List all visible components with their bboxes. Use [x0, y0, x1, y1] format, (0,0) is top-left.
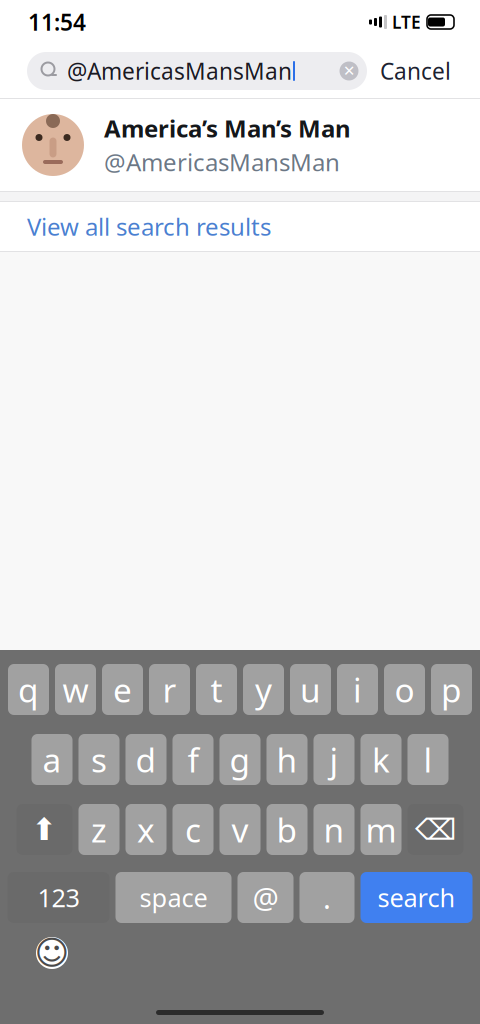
- button[interactable]: c: [172, 804, 213, 855]
- button[interactable]: America’s Man’s Man: [0, 99, 480, 191]
- button[interactable]: Emoji keyboard: [26, 927, 78, 979]
- button[interactable]: Clear text: [331, 52, 367, 90]
- staticText: u: [300, 667, 321, 712]
- button[interactable]: t: [196, 664, 237, 715]
- staticText: search: [377, 881, 455, 914]
- button[interactable]: Delete: [407, 804, 463, 855]
- staticText: LTE: [392, 10, 421, 33]
- staticText: 11:54: [28, 7, 86, 37]
- staticText: o: [394, 667, 414, 712]
- button[interactable]: m: [360, 804, 401, 855]
- staticText: z: [91, 807, 107, 852]
- button[interactable]: p: [431, 664, 472, 715]
- button[interactable]: y: [243, 664, 284, 715]
- staticText: s: [91, 737, 107, 782]
- staticText: p: [441, 667, 462, 712]
- staticText: ☺: [34, 934, 69, 972]
- button[interactable]: i: [337, 664, 378, 715]
- button[interactable]: space: [115, 872, 231, 923]
- button[interactable]: b: [266, 804, 307, 855]
- button[interactable]: z: [78, 804, 119, 855]
- staticText: q: [18, 667, 39, 712]
- staticText: ⬆: [31, 812, 57, 847]
- button[interactable]: search: [360, 872, 472, 923]
- button[interactable]: n: [313, 804, 354, 855]
- staticText: v: [231, 807, 248, 852]
- button[interactable]: f: [172, 734, 213, 785]
- staticText: d: [135, 737, 156, 782]
- staticText: k: [372, 737, 390, 782]
- button[interactable]: d: [125, 734, 166, 785]
- staticText: t: [210, 667, 222, 712]
- staticText: l: [423, 737, 432, 782]
- button[interactable]: 123: [7, 872, 109, 923]
- button[interactable]: q: [8, 664, 49, 715]
- button[interactable]: @: [237, 872, 293, 923]
- staticText: ⌫: [415, 813, 456, 846]
- staticText: ✕: [343, 63, 355, 79]
- staticText: e: [113, 667, 132, 712]
- staticText: b: [276, 807, 297, 852]
- staticText: @AmericasMansMan: [67, 56, 292, 86]
- staticText: g: [229, 737, 250, 782]
- staticText: @AmericasMansMan: [104, 146, 340, 178]
- staticText: m: [365, 807, 396, 852]
- button[interactable]: .: [299, 872, 354, 923]
- staticText: c: [185, 807, 201, 852]
- staticText: 123: [37, 881, 79, 914]
- staticText: Cancel: [380, 56, 451, 86]
- button[interactable]: e: [102, 664, 143, 715]
- button[interactable]: s: [78, 734, 119, 785]
- button[interactable]: g: [219, 734, 260, 785]
- button[interactable]: w: [55, 664, 96, 715]
- button[interactable]: v: [219, 804, 260, 855]
- staticText: h: [276, 737, 297, 782]
- staticText: i: [353, 667, 362, 712]
- staticText: @: [252, 878, 278, 917]
- staticText: View all search results: [27, 211, 271, 242]
- button[interactable]: Cancel: [367, 49, 464, 93]
- button[interactable]: h: [266, 734, 307, 785]
- button[interactable]: View all search results: [0, 202, 480, 251]
- button[interactable]: a: [31, 734, 72, 785]
- button[interactable]: l: [407, 734, 448, 785]
- staticText: w: [62, 667, 88, 712]
- button[interactable]: r: [149, 664, 190, 715]
- button[interactable]: x: [125, 804, 166, 855]
- staticText: a: [42, 737, 61, 782]
- staticText: j: [329, 737, 338, 782]
- staticText: n: [323, 807, 344, 852]
- button[interactable]: j: [313, 734, 354, 785]
- button[interactable]: Shift: [16, 804, 72, 855]
- staticText: x: [137, 807, 155, 852]
- button[interactable]: u: [290, 664, 331, 715]
- staticText: .: [323, 878, 331, 917]
- staticText: f: [187, 737, 198, 782]
- staticText: America’s Man’s Man: [104, 112, 351, 144]
- staticText: y: [255, 667, 272, 712]
- staticText: r: [162, 667, 176, 712]
- button[interactable]: o: [384, 664, 425, 715]
- button[interactable]: k: [360, 734, 401, 785]
- staticText: space: [139, 881, 207, 914]
